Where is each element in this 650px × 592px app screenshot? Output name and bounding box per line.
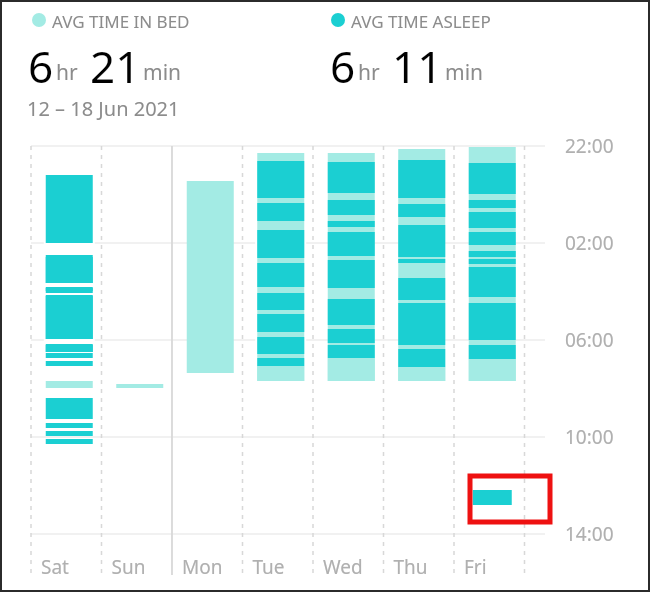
button[interactable]: Weekly sleep chart xyxy=(0,0,650,592)
